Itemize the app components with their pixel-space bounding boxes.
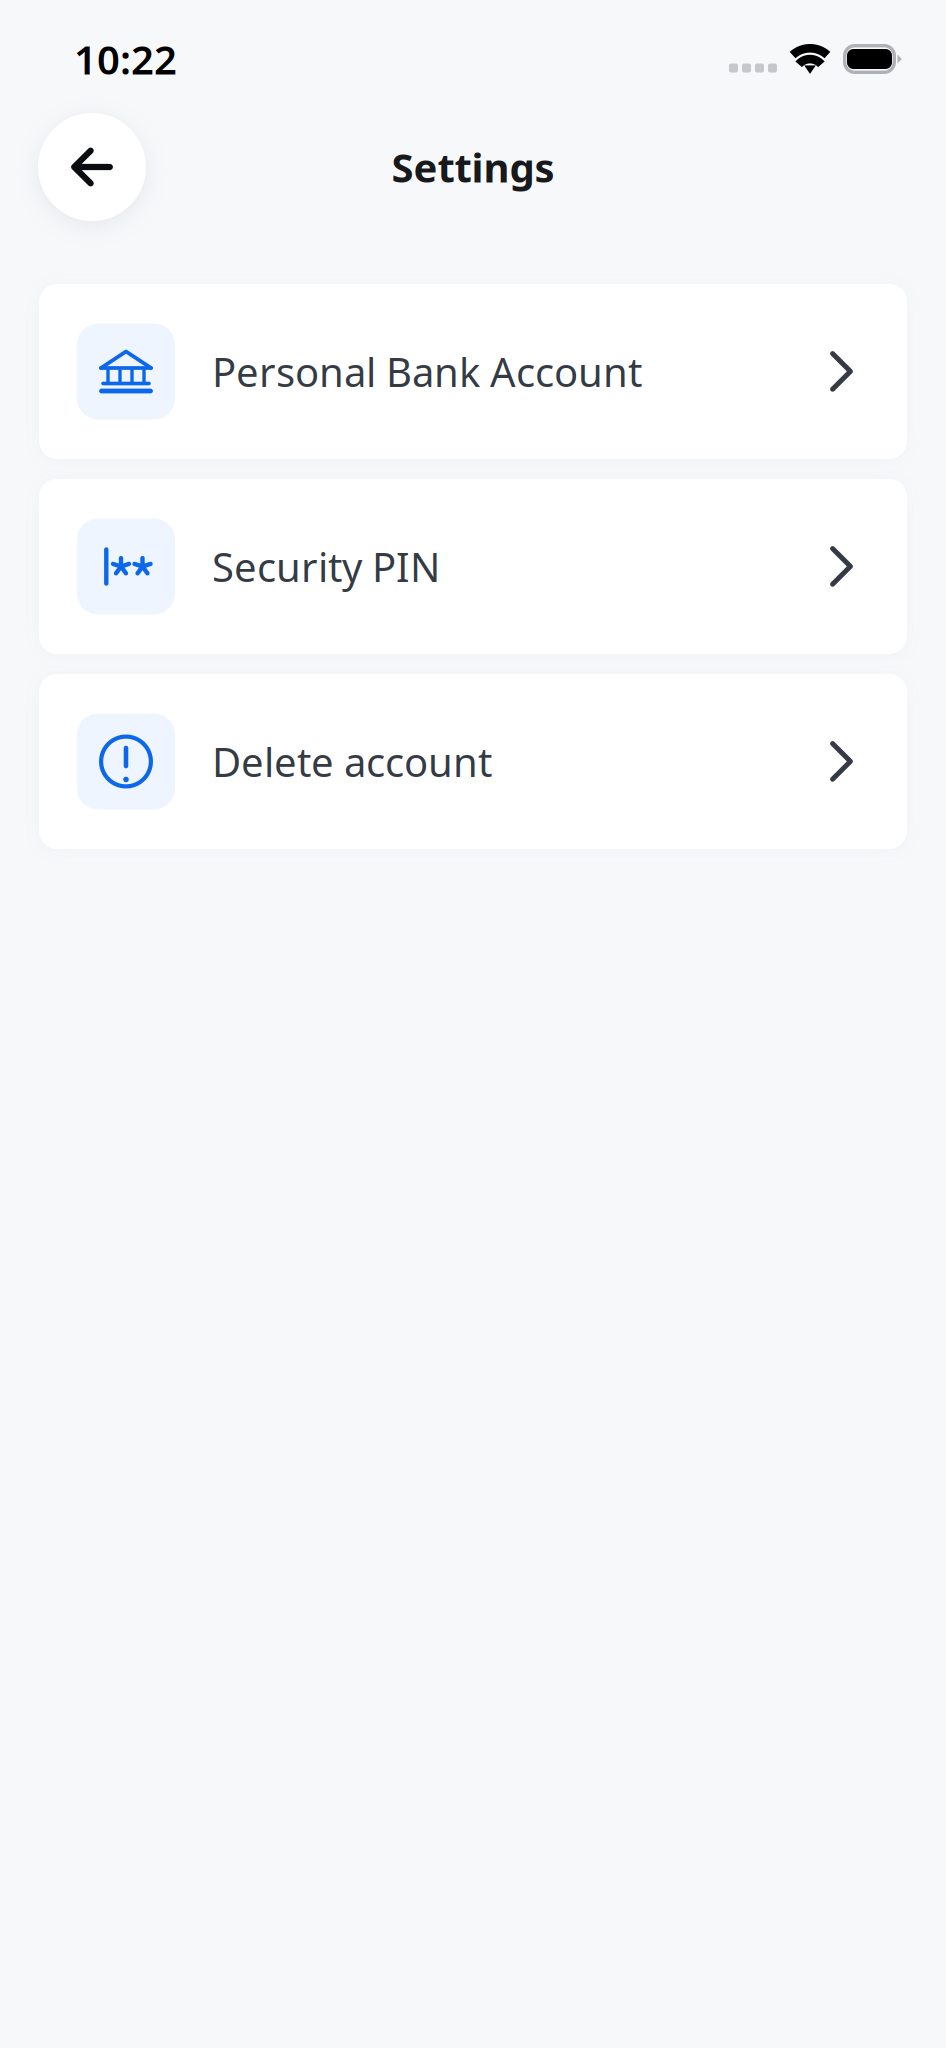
button[interactable]: Delete account xyxy=(39,674,907,849)
staticText: Security PIN xyxy=(212,540,440,593)
staticText: Delete account xyxy=(212,735,492,788)
button[interactable]: Back xyxy=(38,113,146,221)
staticText: 10:22 xyxy=(74,32,177,85)
button[interactable]: Security PIN xyxy=(39,479,907,654)
staticText: Settings xyxy=(391,140,554,193)
staticText: Personal Bank Account xyxy=(212,345,642,398)
button[interactable]: Personal Bank Account xyxy=(39,284,907,459)
